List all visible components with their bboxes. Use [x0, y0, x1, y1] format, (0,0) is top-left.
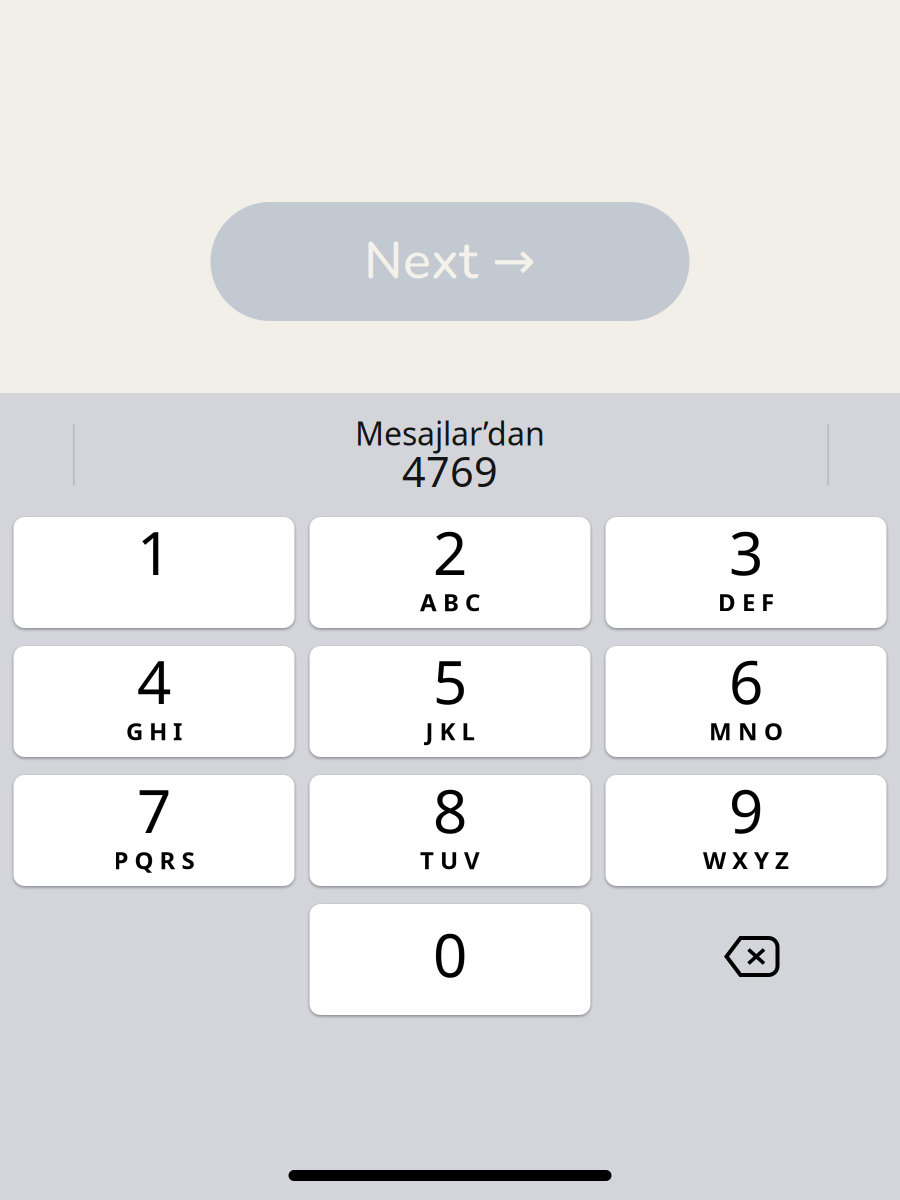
- staticText: P Q R S: [113, 844, 194, 876]
- button[interactable]: 2: [309, 517, 590, 628]
- staticText: J K L: [425, 715, 474, 747]
- staticText: 1: [137, 512, 171, 592]
- button[interactable]: 6: [605, 646, 886, 757]
- button[interactable]: Next →: [210, 202, 689, 321]
- button[interactable]: Delete: [605, 904, 886, 1015]
- staticText: 2: [433, 512, 467, 592]
- staticText: 4: [137, 641, 171, 721]
- staticText: 4769: [402, 444, 498, 498]
- button[interactable]: 8: [309, 775, 590, 886]
- staticText: A B C: [420, 586, 480, 618]
- staticText: Next →: [364, 226, 536, 297]
- staticText: 3: [729, 512, 763, 592]
- staticText: 7: [137, 770, 171, 850]
- staticText: 8: [433, 770, 467, 850]
- staticText: T U V: [420, 844, 480, 876]
- button[interactable]: 4: [13, 646, 294, 757]
- button[interactable]: 5: [309, 646, 590, 757]
- staticText: Mesajlar’dan: [355, 412, 545, 454]
- staticText: G H I: [126, 715, 182, 747]
- staticText: 0: [433, 914, 467, 994]
- staticText: 9: [729, 770, 763, 850]
- button[interactable]: 1: [13, 517, 294, 628]
- button[interactable]: 0: [309, 904, 590, 1015]
- button[interactable]: 7: [13, 775, 294, 886]
- staticText: 6: [729, 641, 763, 721]
- staticText: 5: [433, 641, 467, 721]
- staticText: D E F: [718, 586, 774, 618]
- staticText: W X Y Z: [703, 844, 789, 876]
- staticText: M N O: [709, 715, 783, 747]
- button[interactable]: 3: [605, 517, 886, 628]
- button[interactable]: 9: [605, 775, 886, 886]
